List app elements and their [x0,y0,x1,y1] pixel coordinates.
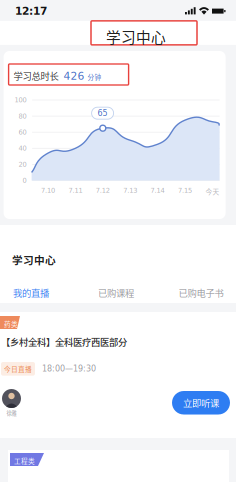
staticText: 徐雅 [6,409,16,417]
button[interactable]: 我的直播 [9,286,53,299]
staticText: 工程类 [14,456,35,466]
staticText: 100 [15,96,27,104]
staticText: 分钟 [88,72,102,82]
staticText: 学习中心 [106,26,166,47]
staticText: 7.10 [41,186,55,194]
staticText: 我的直播 [13,286,49,299]
staticText: 学习中心 [12,252,56,267]
staticText: 药类 [4,319,18,329]
staticText: 80 [19,112,27,120]
staticText: 7.11 [68,186,82,194]
button[interactable]: 已购课程 [94,286,138,299]
staticText: 【乡村全科】全科医疗西医部分 [1,335,127,348]
staticText: 426 [64,70,85,82]
staticText: 18:00—19:30 [42,364,96,373]
staticText: 60 [19,128,27,136]
button[interactable]: 药类 [0,312,237,438]
staticText: 已购课程 [98,286,134,299]
staticText: 0 [23,177,27,184]
staticText: 立即听课 [183,396,219,409]
staticText: 7.14 [151,186,165,194]
staticText: 学习总时长 [14,69,59,82]
staticText: 今日直播 [4,364,32,374]
staticText: 7.15 [178,186,192,194]
staticText: 12:17 [15,5,47,17]
staticText: 已购电子书 [178,286,223,299]
staticText: 7.13 [123,186,137,194]
staticText: 7.12 [96,186,110,194]
staticText: 今天 [205,186,219,196]
button[interactable]: 已购电子书 [174,286,228,299]
staticText: 65 [98,108,108,118]
staticText: 40 [19,144,27,152]
staticText: 20 [19,160,27,168]
